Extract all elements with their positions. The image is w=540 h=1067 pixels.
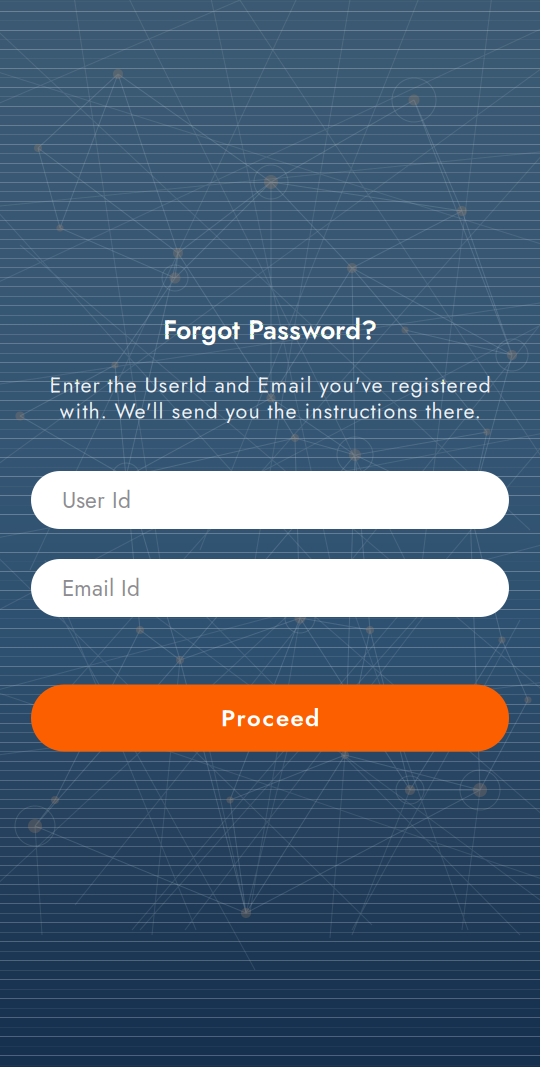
staticText: User Id — [62, 484, 131, 516]
button[interactable]: Proceed — [31, 684, 509, 751]
staticText: Proceed — [221, 701, 319, 735]
staticText: Forgot Password? — [163, 311, 377, 349]
button[interactable]: Email Id — [31, 559, 509, 617]
staticText: with. We'll send you the instructions th… — [59, 396, 480, 426]
button[interactable]: User Id — [31, 471, 509, 529]
staticText: Email Id — [62, 572, 140, 604]
staticText: Enter the UserId and Email you've regist… — [49, 370, 490, 400]
